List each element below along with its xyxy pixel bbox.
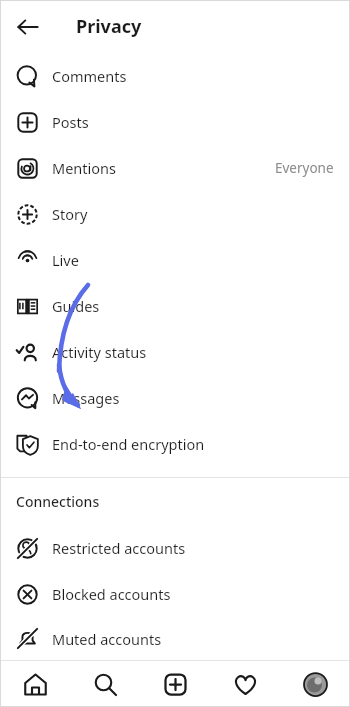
staticText: Blocked accounts bbox=[52, 584, 171, 604]
staticText: Privacy bbox=[76, 14, 142, 39]
button[interactable]: Search bbox=[70, 661, 140, 707]
staticText: Connections bbox=[16, 492, 100, 511]
staticText: Messages bbox=[52, 388, 120, 408]
button[interactable]: Story bbox=[0, 191, 350, 237]
button[interactable]: Restricted accounts bbox=[0, 525, 350, 571]
staticText: Restricted accounts bbox=[52, 538, 186, 558]
button[interactable]: Posts bbox=[0, 99, 350, 145]
staticText: End-to-end encryption bbox=[52, 434, 205, 454]
button[interactable]: Mentions bbox=[0, 145, 350, 191]
button[interactable]: Back bbox=[10, 9, 46, 45]
button[interactable]: Comments bbox=[0, 53, 350, 99]
staticText: Posts bbox=[52, 112, 89, 132]
staticText: Mentions bbox=[52, 158, 116, 178]
button[interactable]: Activity bbox=[210, 661, 280, 707]
staticText: Live bbox=[52, 250, 79, 270]
button[interactable]: Create bbox=[140, 661, 210, 707]
button[interactable]: Guides bbox=[0, 283, 350, 329]
button[interactable]: Home bbox=[0, 661, 70, 707]
staticText: Guides bbox=[52, 296, 100, 316]
staticText: Comments bbox=[52, 66, 127, 86]
staticText: Muted accounts bbox=[52, 629, 162, 649]
button[interactable]: End-to-end encryption bbox=[0, 421, 350, 467]
staticText: Activity status bbox=[52, 342, 147, 362]
button[interactable]: Activity status bbox=[0, 329, 350, 375]
button[interactable]: Blocked accounts bbox=[0, 571, 350, 617]
button[interactable]: Messages bbox=[0, 375, 350, 421]
button[interactable]: Muted accounts bbox=[0, 617, 350, 660]
staticText: Story bbox=[52, 204, 88, 224]
staticText: Everyone bbox=[275, 159, 334, 177]
button[interactable]: Live bbox=[0, 237, 350, 283]
button[interactable]: Profile bbox=[280, 661, 350, 707]
